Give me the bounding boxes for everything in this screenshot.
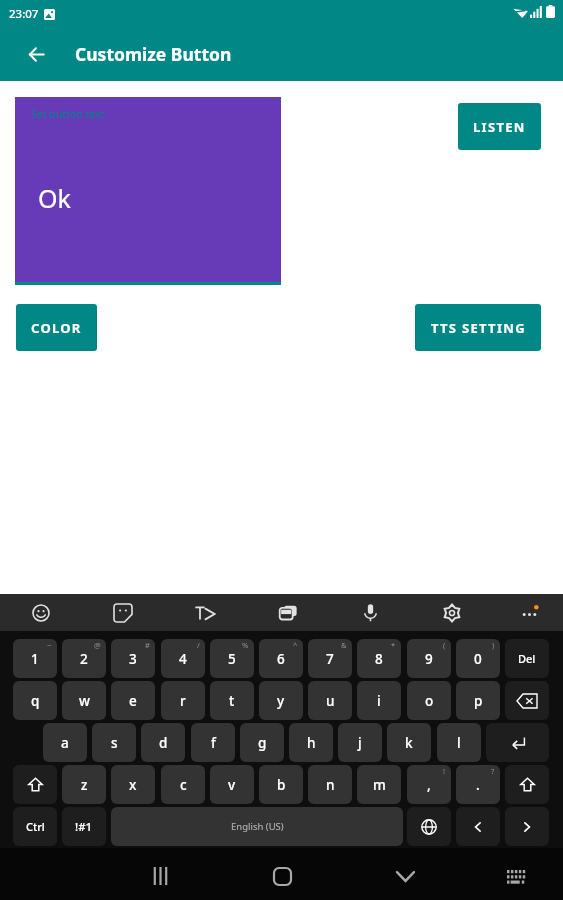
button[interactable]: Hide keyboard [384, 855, 426, 897]
button[interactable]: Recents [139, 855, 181, 897]
button[interactable]: , [407, 765, 451, 804]
button[interactable]: c [161, 765, 205, 804]
button[interactable]: 8 [357, 639, 401, 678]
button[interactable]: Back [19, 37, 53, 71]
button[interactable]: GIF [268, 594, 308, 631]
button[interactable]: English (US) [111, 807, 403, 846]
button[interactable]: p [456, 681, 500, 720]
staticText: Set button text [31, 107, 105, 121]
button[interactable]: 4 [161, 639, 205, 678]
button[interactable]: Shift [13, 765, 57, 804]
button[interactable]: Change language [407, 807, 451, 846]
button[interactable]: Settings [432, 594, 472, 631]
staticText: m [373, 776, 386, 794]
staticText: # [145, 640, 150, 650]
button[interactable]: Backspace [505, 681, 549, 720]
staticText: k [405, 734, 413, 752]
staticText: English (US) [231, 820, 284, 833]
button[interactable]: s [92, 723, 136, 762]
button[interactable]: n [308, 765, 352, 804]
staticText: 4 [179, 650, 187, 668]
button[interactable]: Voice input [350, 594, 390, 631]
staticText: w [79, 692, 90, 710]
button[interactable]: a [43, 723, 87, 762]
button[interactable]: r [161, 681, 205, 720]
staticText: !#1 [75, 819, 93, 835]
button[interactable]: Emoji [21, 594, 61, 631]
staticText: 7 [326, 650, 334, 668]
button[interactable]: f [191, 723, 235, 762]
staticText: ~ [47, 640, 52, 650]
button[interactable]: Enter [486, 723, 549, 762]
button[interactable]: More options [509, 594, 549, 631]
button[interactable]: e [111, 681, 155, 720]
button[interactable]: o [407, 681, 451, 720]
staticText: 2 [80, 650, 88, 668]
button[interactable]: Shift [505, 765, 549, 804]
staticText: t [229, 692, 235, 710]
staticText: 3 [129, 650, 137, 668]
staticText: ) [492, 640, 495, 650]
button[interactable]: 1 [13, 639, 57, 678]
button[interactable]: 7 [308, 639, 352, 678]
button[interactable]: k [387, 723, 431, 762]
button[interactable]: LISTEN [458, 103, 541, 150]
staticText: 0 [474, 650, 482, 668]
button[interactable]: d [141, 723, 185, 762]
staticText: / [197, 640, 200, 650]
button[interactable]: . [456, 765, 500, 804]
button[interactable]: Next [505, 807, 549, 846]
button[interactable]: Previous [456, 807, 500, 846]
button[interactable]: Delete [505, 639, 549, 678]
button[interactable]: v [210, 765, 254, 804]
button[interactable]: x [111, 765, 155, 804]
button[interactable]: 0 [456, 639, 500, 678]
button[interactable]: z [62, 765, 106, 804]
staticText: TTS SETTING [431, 319, 526, 337]
staticText: f [211, 734, 216, 752]
button[interactable]: m [357, 765, 401, 804]
button[interactable]: Ctrl [13, 807, 57, 846]
staticText: & [341, 640, 347, 650]
button[interactable]: TTS SETTING [415, 304, 541, 351]
staticText: v [228, 776, 236, 794]
button[interactable]: y [259, 681, 303, 720]
button[interactable]: !#1 [62, 807, 106, 846]
button[interactable]: COLOR [16, 304, 97, 351]
button[interactable]: b [259, 765, 303, 804]
staticText: u [326, 692, 335, 710]
staticText: 23:07 [9, 6, 39, 22]
staticText: ? [491, 766, 495, 776]
button[interactable]: i [357, 681, 401, 720]
staticText: . [476, 776, 480, 794]
button[interactable]: Stickers [103, 594, 143, 631]
button[interactable]: 2 [62, 639, 106, 678]
button[interactable]: q [13, 681, 57, 720]
staticText: b [277, 776, 286, 794]
button[interactable]: l [437, 723, 481, 762]
staticText: ( [443, 640, 446, 650]
button[interactable]: Switch keyboard [494, 855, 536, 897]
button[interactable]: u [308, 681, 352, 720]
button[interactable]: 9 [407, 639, 451, 678]
button[interactable]: Handwriting [185, 594, 225, 631]
staticText: n [326, 776, 335, 794]
button[interactable]: 6 [259, 639, 303, 678]
staticText: x [129, 776, 137, 794]
button[interactable]: g [240, 723, 284, 762]
button[interactable]: Home [261, 855, 303, 897]
button[interactable]: 5 [210, 639, 254, 678]
staticText: 1 [31, 650, 39, 668]
staticText: e [129, 692, 137, 710]
staticText: q [31, 692, 40, 710]
button[interactable]: w [62, 681, 106, 720]
button[interactable]: h [289, 723, 333, 762]
staticText: z [81, 776, 88, 794]
button[interactable]: 3 [111, 639, 155, 678]
staticText: 6 [277, 650, 285, 668]
staticText: j [358, 734, 362, 752]
button[interactable]: Set button text [15, 97, 281, 285]
staticText: i [377, 692, 381, 710]
button[interactable]: t [210, 681, 254, 720]
button[interactable]: j [338, 723, 382, 762]
